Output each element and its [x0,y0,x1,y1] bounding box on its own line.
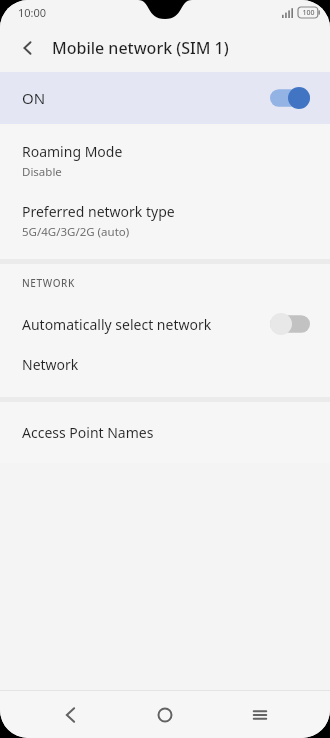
staticText: Roaming Mode [22,142,123,161]
button[interactable]: Back [47,691,95,738]
button[interactable]: Switch off [268,311,312,337]
button[interactable]: Home [141,691,189,738]
staticText: 10:00 [18,5,47,20]
button[interactable]: Preferred network type [0,191,330,251]
staticText: Access Point Names [22,423,154,442]
button[interactable]: Back [8,28,48,68]
button[interactable]: Recent apps [236,691,284,738]
staticText: ON [22,88,268,108]
button[interactable]: Access Point Names [0,412,330,453]
staticText: Disable [22,164,62,180]
staticText: Automatically select network [22,315,268,334]
staticText: Network [22,355,79,374]
button[interactable]: Switch on [268,85,312,111]
button[interactable]: Automatically select network [0,304,330,344]
staticText: 5G/4G/3G/2G (auto) [22,224,130,240]
staticText: Mobile network (SIM 1) [52,37,229,59]
staticText: 100 [302,8,315,18]
staticText: Preferred network type [22,202,175,221]
staticText: NETWORK [22,276,75,290]
button[interactable]: Roaming Mode [0,131,330,191]
button[interactable]: Network [0,344,330,385]
button[interactable]: ON [0,72,330,124]
